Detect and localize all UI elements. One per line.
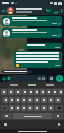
button[interactable]: Video call bbox=[45, 7, 52, 14]
button[interactable]: Key bbox=[27, 105, 33, 111]
button[interactable]: Key bbox=[58, 89, 63, 95]
button[interactable]: Key bbox=[28, 89, 33, 95]
button[interactable]: Key bbox=[40, 89, 45, 95]
button[interactable] bbox=[2, 16, 62, 26]
button[interactable]: Space bbox=[13, 113, 52, 119]
button[interactable]: Key bbox=[27, 97, 33, 103]
button[interactable]: Key bbox=[22, 89, 27, 95]
button[interactable]: Key bbox=[52, 89, 57, 95]
button[interactable]: Hide keyboard bbox=[56, 122, 61, 127]
button[interactable]: Key bbox=[21, 97, 26, 103]
button[interactable] bbox=[2, 28, 62, 38]
button[interactable] bbox=[2, 70, 32, 73]
button[interactable]: Key bbox=[41, 105, 47, 111]
button[interactable] bbox=[10, 84, 18, 86]
button[interactable]: More options bbox=[59, 9, 63, 13]
button[interactable]: Backspace bbox=[55, 105, 63, 111]
button[interactable] bbox=[46, 84, 54, 86]
button[interactable]: Key bbox=[1, 89, 7, 95]
button[interactable] bbox=[7, 6, 45, 15]
button[interactable] bbox=[6, 75, 47, 82]
button[interactable] bbox=[25, 43, 62, 49]
button[interactable]: Record voice message bbox=[56, 75, 63, 82]
button[interactable]: Key bbox=[41, 97, 47, 103]
button[interactable]: Key bbox=[8, 89, 14, 95]
button[interactable]: Key bbox=[46, 89, 51, 95]
button[interactable]: Key bbox=[48, 105, 54, 111]
button[interactable]: Key bbox=[21, 105, 26, 111]
button[interactable]: Key bbox=[3, 97, 8, 103]
button[interactable]: Key bbox=[34, 105, 40, 111]
button[interactable]: Key bbox=[9, 97, 14, 103]
button[interactable]: Key bbox=[55, 97, 61, 103]
button[interactable]: Key bbox=[15, 89, 21, 95]
button[interactable]: Shift bbox=[1, 105, 8, 111]
button[interactable] bbox=[28, 84, 36, 86]
button[interactable]: Camera bbox=[48, 75, 55, 82]
button[interactable]: Change keyboard bbox=[3, 122, 8, 127]
button[interactable]: Voice call bbox=[52, 7, 59, 14]
button[interactable]: Symbols bbox=[1, 113, 12, 119]
button[interactable] bbox=[14, 51, 62, 68]
button[interactable]: Enter bbox=[53, 113, 63, 119]
button[interactable]: Attach bbox=[1, 76, 6, 81]
button[interactable]: Key bbox=[15, 97, 20, 103]
button[interactable]: Key bbox=[9, 105, 14, 111]
button[interactable]: Back bbox=[1, 8, 7, 14]
button[interactable]: Key bbox=[34, 89, 39, 95]
button[interactable]: Key bbox=[34, 97, 40, 103]
button[interactable]: Key bbox=[15, 105, 20, 111]
button[interactable]: Key bbox=[48, 97, 54, 103]
